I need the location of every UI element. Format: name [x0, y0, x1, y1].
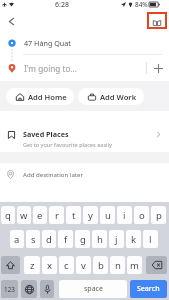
button[interactable]: Add stop: [147, 55, 169, 81]
staticText: p: [156, 209, 162, 222]
staticText: Add Work: [100, 92, 137, 102]
staticText: 123: [4, 285, 15, 294]
button[interactable]: I'm going to...: [0, 55, 146, 81]
staticText: h: [97, 233, 103, 246]
staticText: x: [47, 259, 53, 272]
button[interactable]: k: [126, 230, 141, 248]
staticText: space: [84, 284, 103, 294]
button[interactable]: Add Home: [6, 88, 74, 105]
button[interactable]: Switch keyboard language: [21, 280, 37, 298]
button[interactable]: z: [24, 256, 40, 274]
button[interactable]: Add destination later: [0, 163, 169, 185]
button[interactable]: e: [33, 206, 47, 224]
button[interactable]: Search: [130, 280, 167, 298]
staticText: 6:28: [55, 0, 69, 8]
staticText: e: [37, 209, 43, 222]
button[interactable]: 47 Hàng Quat: [0, 31, 169, 55]
button[interactable]: Add Work: [78, 88, 144, 105]
button[interactable]: u: [100, 206, 115, 224]
button[interactable]: b: [93, 256, 108, 274]
staticText: q: [5, 209, 11, 222]
staticText: d: [46, 233, 52, 246]
staticText: f: [64, 233, 68, 246]
button[interactable]: w: [17, 206, 31, 224]
staticText: Add destination later: [23, 170, 83, 178]
button[interactable]: j: [109, 230, 124, 248]
staticText: I'm going to...: [24, 63, 77, 74]
button[interactable]: n: [110, 256, 125, 274]
staticText: r: [55, 209, 59, 222]
staticText: n: [115, 259, 121, 272]
staticText: Search: [137, 284, 160, 294]
button[interactable]: p: [151, 206, 166, 224]
button[interactable]: Shift: [1, 256, 20, 274]
button[interactable]: Backspace: [146, 256, 167, 274]
staticText: m: [130, 259, 139, 272]
button[interactable]: 123: [1, 280, 18, 298]
button[interactable]: Voice input: [40, 280, 54, 298]
staticText: u: [105, 209, 111, 222]
button[interactable]: m: [127, 256, 142, 274]
staticText: b: [98, 259, 104, 272]
button[interactable]: f: [58, 230, 73, 248]
staticText: Add Home: [28, 92, 67, 102]
button[interactable]: r: [49, 206, 64, 224]
staticText: s: [31, 233, 36, 246]
staticText: k: [131, 233, 137, 246]
staticText: g: [80, 233, 86, 246]
button[interactable]: d: [42, 230, 56, 248]
staticText: 47 Hàng Quat: [24, 38, 71, 48]
button[interactable]: Back: [3, 13, 19, 29]
staticText: Get to your favourite places easily: [23, 141, 112, 149]
button[interactable]: c: [59, 256, 74, 274]
staticText: c: [64, 259, 69, 272]
staticText: Saved Places: [23, 129, 69, 139]
staticText: t: [72, 209, 76, 222]
button[interactable]: i: [117, 206, 132, 224]
staticText: i: [123, 209, 126, 222]
button[interactable]: y: [83, 206, 98, 224]
staticText: l: [149, 233, 152, 246]
button[interactable]: v: [76, 256, 91, 274]
button[interactable]: s: [26, 230, 40, 248]
staticText: z: [30, 259, 35, 272]
staticText: w: [20, 209, 28, 222]
staticText: y: [88, 209, 93, 222]
button[interactable]: space: [59, 280, 127, 298]
staticText: a: [14, 233, 20, 246]
button[interactable]: l: [143, 230, 158, 248]
button[interactable]: o: [134, 206, 149, 224]
staticText: v: [81, 259, 86, 272]
staticText: o: [139, 209, 145, 222]
button[interactable]: x: [42, 256, 57, 274]
button[interactable]: Map: [150, 16, 164, 30]
staticText: j: [115, 233, 118, 246]
button[interactable]: Saved Places: [0, 111, 169, 152]
button[interactable]: h: [92, 230, 107, 248]
button[interactable]: a: [10, 230, 24, 248]
button[interactable]: g: [75, 230, 90, 248]
button[interactable]: q: [1, 206, 15, 224]
staticText: 84%: [135, 0, 148, 8]
button[interactable]: t: [66, 206, 81, 224]
